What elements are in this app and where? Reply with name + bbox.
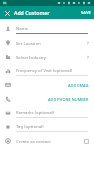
- button[interactable]: Frequency of Visit (optional): [0, 64, 94, 78]
- staticText: Frequency of Visit (optional): [16, 67, 73, 73]
- staticText: ADD EMAIL: [68, 83, 89, 88]
- button[interactable]: ADD PHONE NUMBER: [0, 92, 94, 106]
- staticText: Tag (optional): [16, 123, 44, 129]
- staticText: ADD PHONE NUMBER: [48, 97, 89, 102]
- staticText: Create as contact: [16, 138, 84, 144]
- button[interactable]: Name: [0, 22, 94, 36]
- button[interactable]: Remarks (optional): [0, 106, 94, 120]
- button[interactable]: Select Industry: [0, 50, 94, 64]
- button[interactable]: SAVE: [79, 8, 93, 18]
- staticText: Set Location: [16, 40, 86, 46]
- button[interactable]: Create as contact: [0, 134, 94, 148]
- staticText: SAVE: [81, 10, 91, 16]
- staticText: Remarks (optional): [16, 109, 55, 115]
- staticText: Select Industry: [16, 54, 86, 60]
- button[interactable]: Set Location: [0, 36, 94, 50]
- staticText: Add Customer: [14, 9, 50, 16]
- button[interactable]: Close: [2, 8, 12, 18]
- button[interactable]: Tag (optional): [0, 120, 94, 134]
- staticText: Name: [16, 25, 29, 31]
- button[interactable]: ADD EMAIL: [0, 78, 94, 92]
